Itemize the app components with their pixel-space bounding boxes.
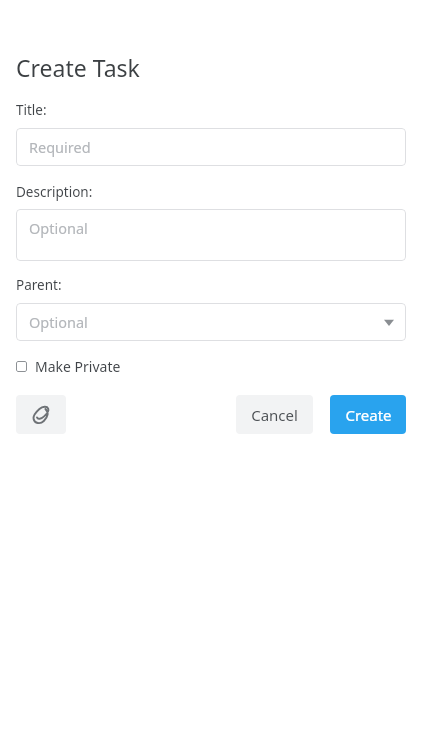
staticText: Description: [16,183,93,201]
staticText: Optional [29,312,88,332]
button[interactable]: Attach file [16,395,66,434]
staticText: Create Task [16,52,140,83]
button[interactable]: Required [16,128,406,166]
button[interactable]: Cancel [236,395,313,434]
staticText: Required [29,137,91,157]
staticText: Cancel [251,405,298,425]
button[interactable]: Create [330,395,406,434]
button[interactable]: Optional [16,209,406,261]
staticText: Title: [16,101,47,119]
staticText: Make Private [35,357,121,376]
button[interactable]: Optional [16,303,406,341]
staticText: Create [345,405,392,425]
staticText: Optional [29,218,88,238]
button[interactable]: Make Private [16,355,121,378]
staticText: Parent: [16,276,62,294]
